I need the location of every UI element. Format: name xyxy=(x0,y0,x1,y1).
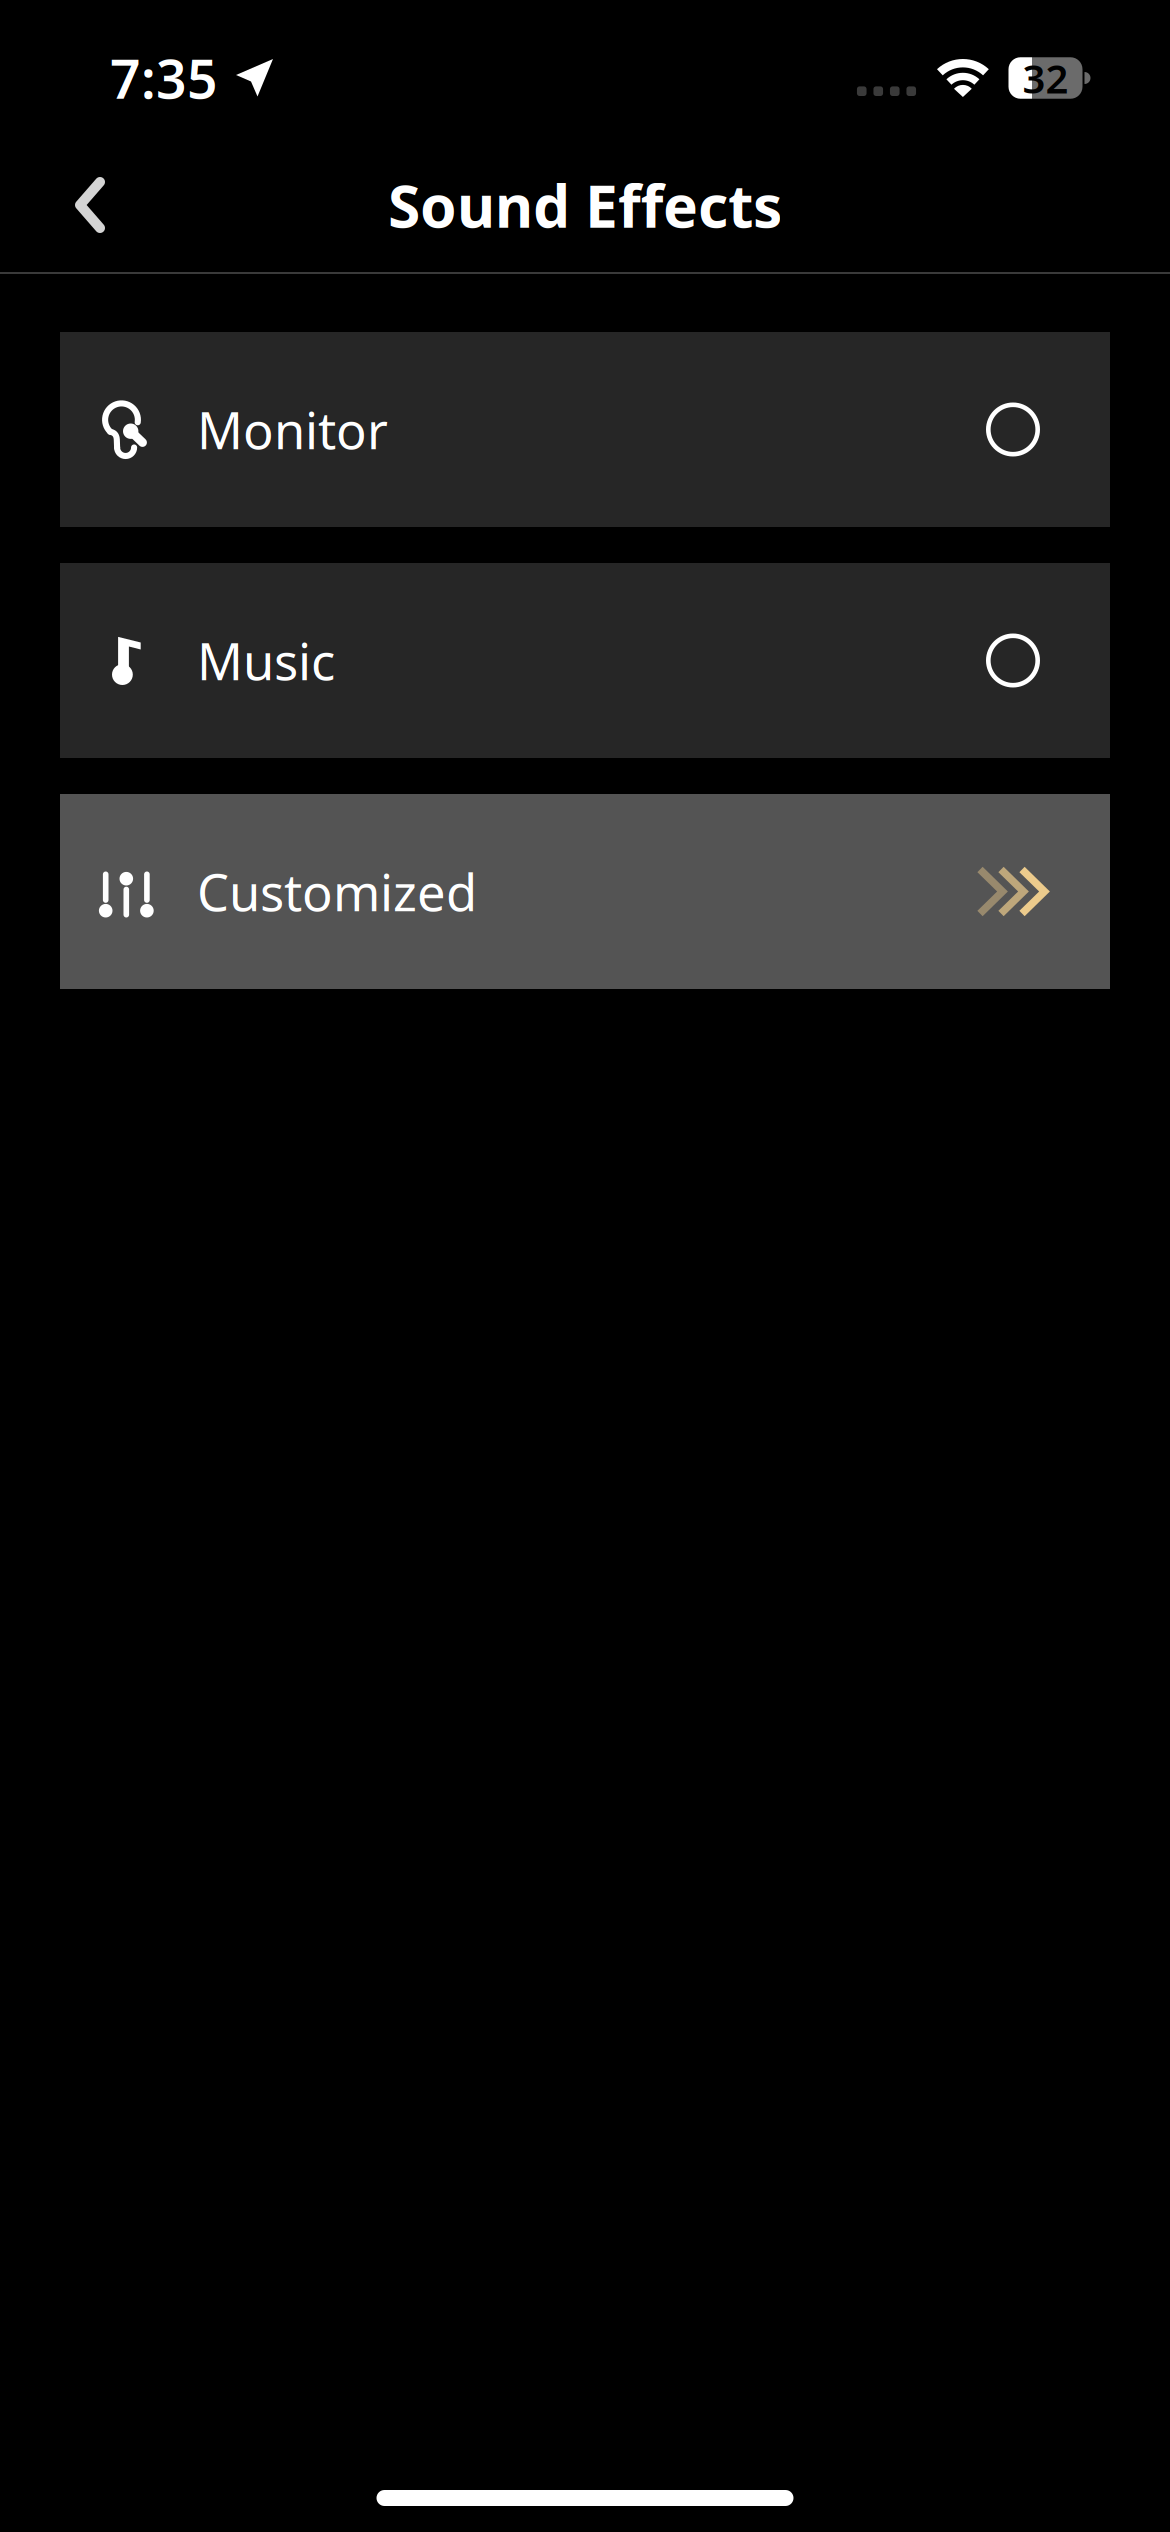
staticText: Sound Effects xyxy=(388,166,782,244)
staticText: Customized xyxy=(197,858,477,925)
button[interactable]: Music xyxy=(60,563,1110,758)
button[interactable]: Monitor xyxy=(60,332,1110,527)
button[interactable]: Customized xyxy=(60,794,1110,989)
staticText: Music xyxy=(197,627,335,694)
button[interactable]: Back xyxy=(40,155,140,255)
staticText: 7:35 xyxy=(110,43,218,113)
staticText: Monitor xyxy=(197,396,388,463)
staticText: 32 xyxy=(1022,51,1068,104)
